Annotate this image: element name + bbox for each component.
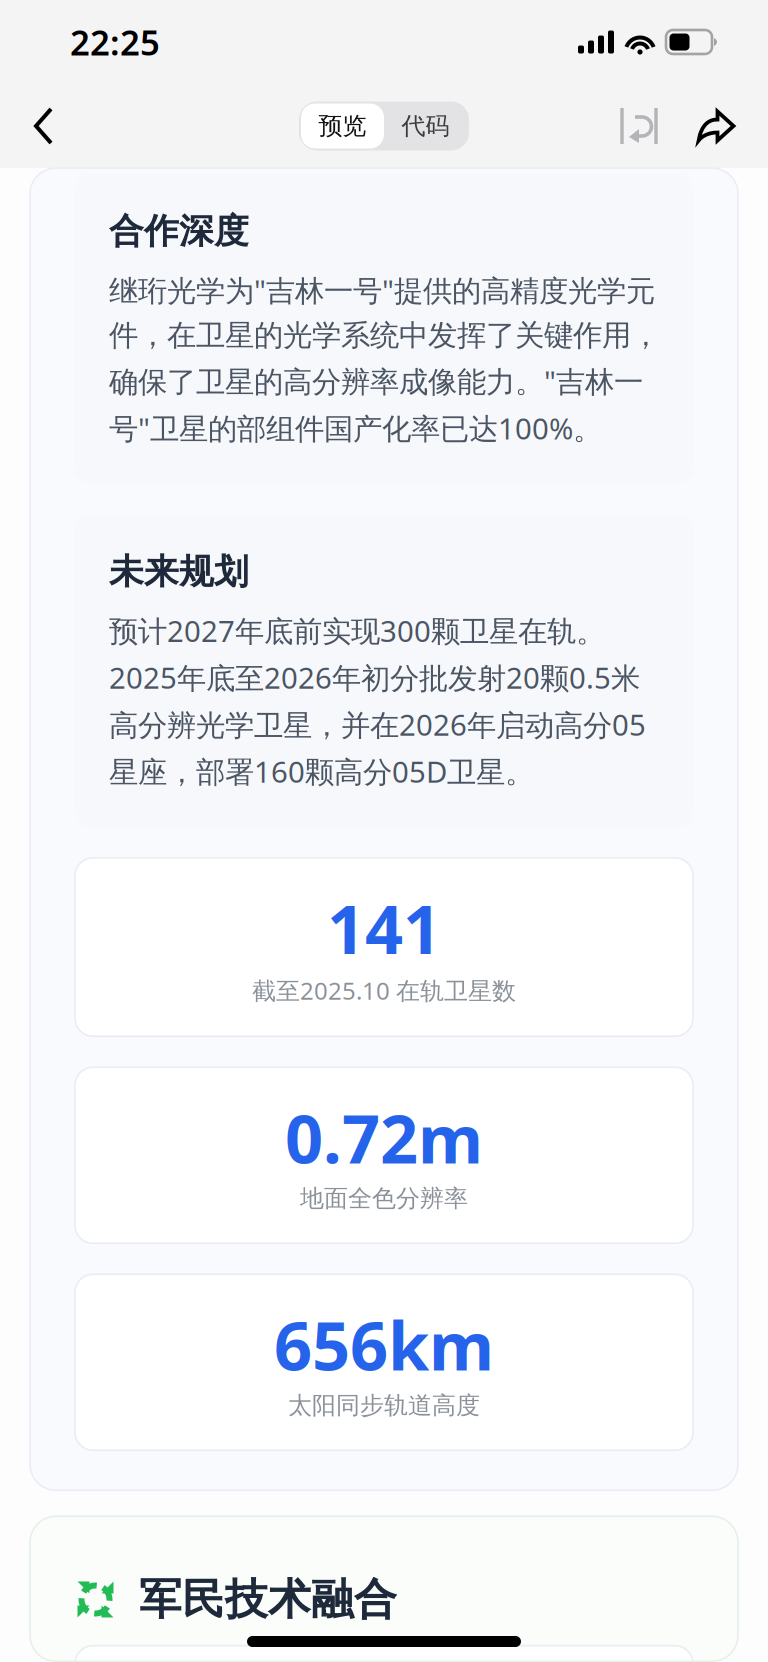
staticText: 军民技术融合 <box>139 1573 397 1626</box>
staticText: 0.72m <box>285 1093 483 1182</box>
staticText: 高分辨光学卫星，并在2026年启动高分05 <box>109 705 646 744</box>
staticText: 预计2027年底前实现300颗卫星在轨。 <box>109 611 605 650</box>
staticText: 代码 <box>401 111 449 141</box>
staticText: 号"卫星的部组件国产化率已达100%。 <box>109 408 602 447</box>
staticText: 太阳同步轨道高度 <box>288 1391 480 1420</box>
staticText: 合作深度 <box>109 210 249 253</box>
staticText: 预览 <box>318 111 366 141</box>
staticText: 继珩光学为"吉林一号"提供的高精度光学元 <box>109 271 655 310</box>
staticText: 未来规划 <box>109 550 249 593</box>
staticText: 星座，部署160颗高分05D卫星。 <box>109 752 534 791</box>
staticText: 141 <box>327 884 441 972</box>
button[interactable]: Back <box>12 88 76 164</box>
button[interactable]: 代码 <box>384 103 467 148</box>
staticText: 656km <box>274 1300 494 1389</box>
button[interactable]: 预览 <box>301 103 384 148</box>
button[interactable]: Share <box>680 88 752 164</box>
staticText: 2025年底至2026年初分批发射20颗0.5米 <box>109 658 640 697</box>
staticText: 22:25 <box>70 19 160 65</box>
staticText: 截至2025.10 在轨卫星数 <box>252 974 516 1006</box>
button[interactable]: Flip layout <box>598 88 680 164</box>
staticText: 地面全色分辨率 <box>300 1184 468 1213</box>
staticText: 件，在卫星的光学系统中发挥了关键作用， <box>109 317 660 353</box>
staticText: 确保了卫星的高分辨率成像能力。"吉林一 <box>109 362 643 401</box>
